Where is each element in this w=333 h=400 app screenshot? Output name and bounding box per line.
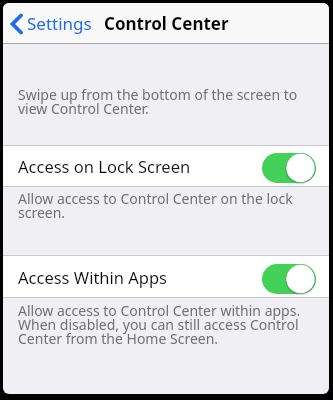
button[interactable]: Access Within Apps	[3, 256, 329, 297]
button[interactable]	[262, 264, 316, 294]
staticText: Access Within Apps	[18, 266, 168, 288]
button[interactable]: Access on Lock Screen	[3, 146, 329, 186]
staticText: Allow access to Control Center within ap…	[18, 301, 301, 348]
staticText: Settings	[27, 12, 92, 35]
staticText: Access on Lock Screen	[18, 155, 191, 177]
button[interactable]: Settings	[10, 12, 92, 35]
button[interactable]	[262, 153, 316, 183]
staticText: Control Center	[104, 12, 229, 35]
staticText: Allow access to Control Center on the lo…	[18, 189, 293, 222]
staticText: Swipe up from the bottom of the screen t…	[18, 85, 298, 118]
